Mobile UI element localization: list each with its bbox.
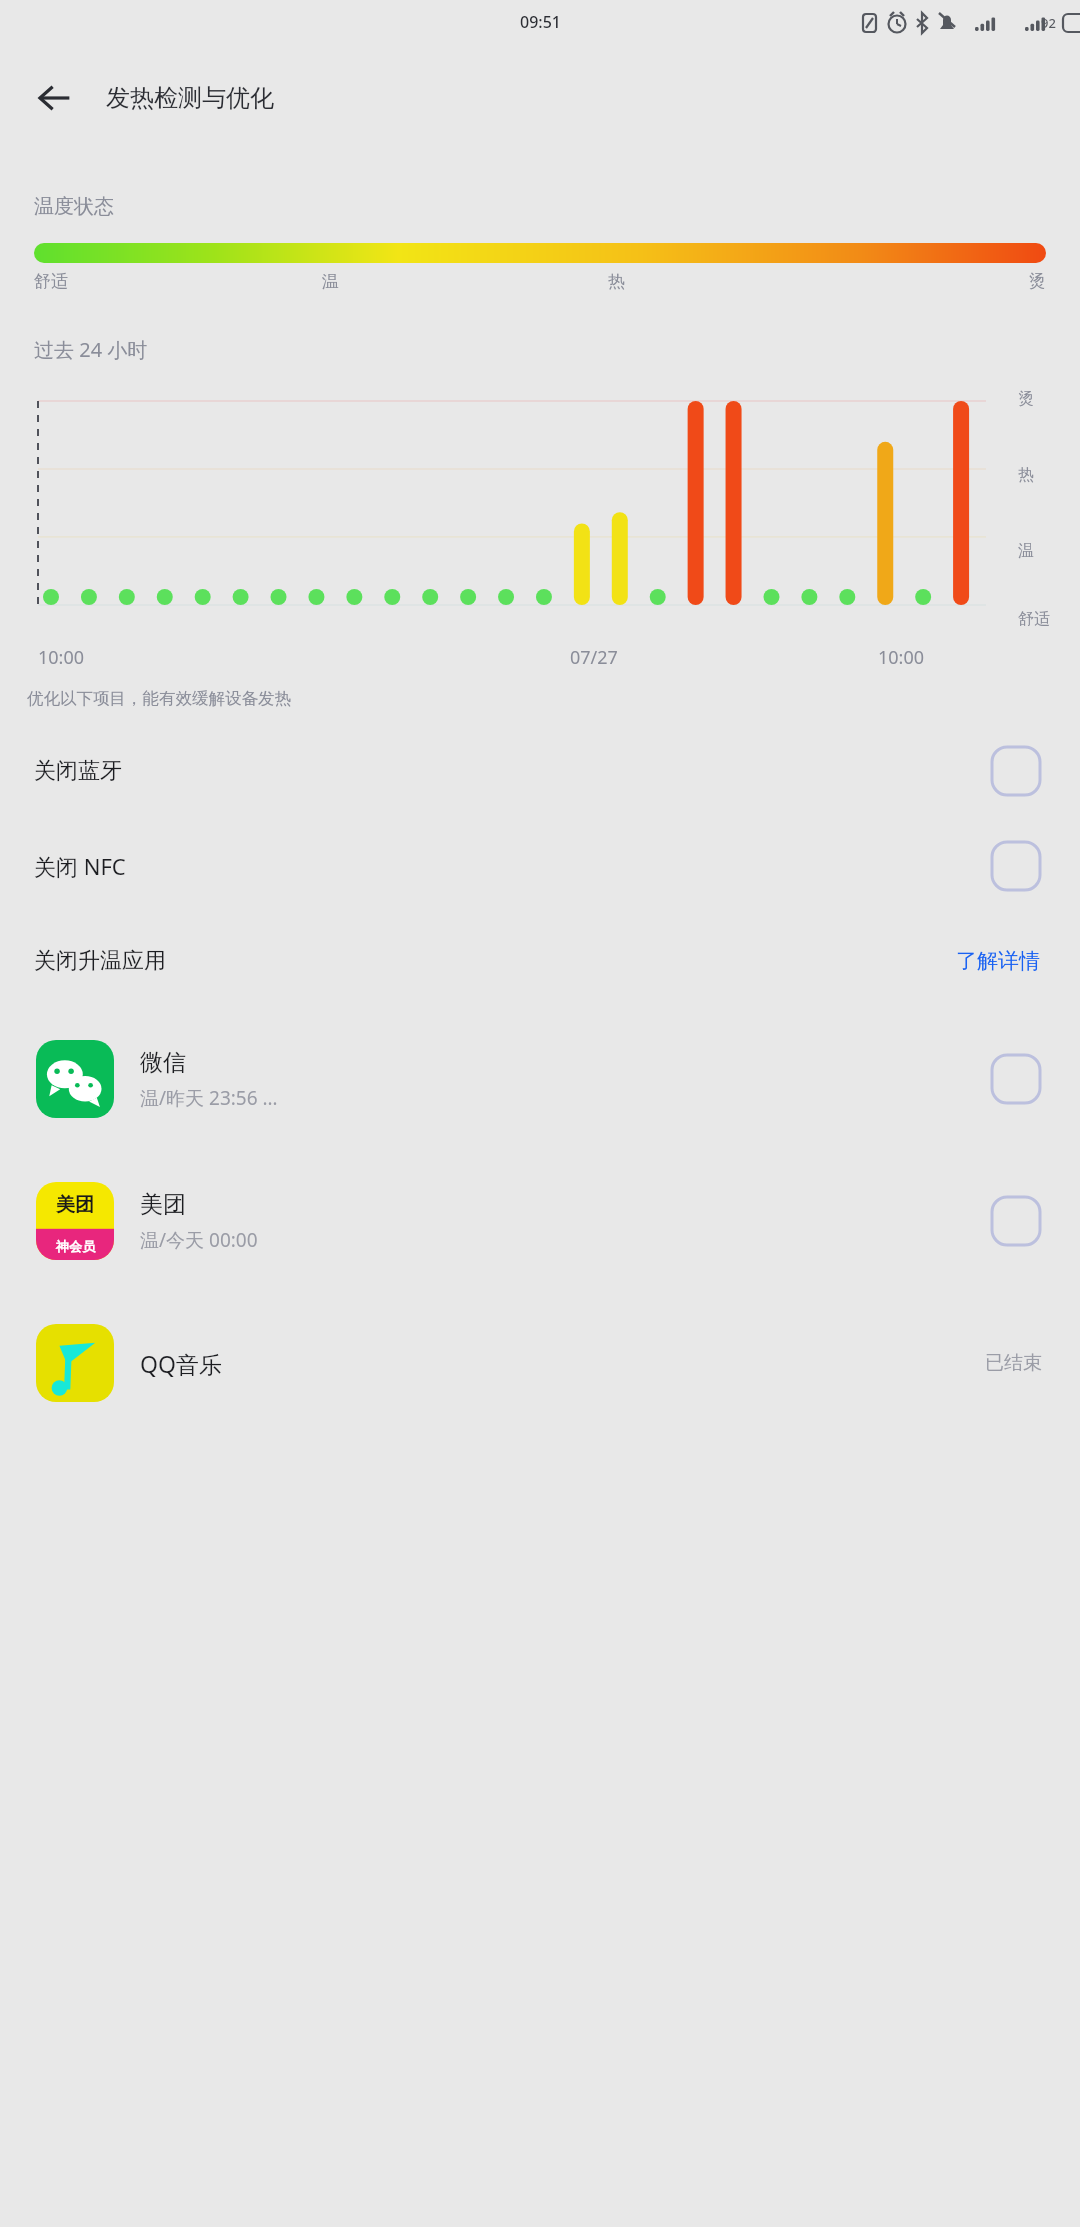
button[interactable]: 关闭蓝牙 bbox=[0, 723, 1080, 818]
staticText: 温度状态 bbox=[34, 194, 114, 219]
staticText: 微信 bbox=[140, 1048, 186, 1077]
staticText: 10:00 bbox=[38, 645, 85, 670]
staticText: 关闭 NFC bbox=[34, 851, 126, 881]
staticText: 热 bbox=[608, 271, 625, 292]
button[interactable]: 了解详情 bbox=[950, 942, 1046, 980]
button[interactable]: 微信 bbox=[0, 1008, 1080, 1150]
staticText: 10:00 bbox=[878, 645, 925, 670]
staticText: 07/27 bbox=[570, 645, 618, 670]
staticText: 发热检测与优化 bbox=[106, 83, 274, 113]
staticText: 92 bbox=[1041, 14, 1056, 32]
staticText: 烫 bbox=[1029, 271, 1046, 292]
staticText: 温/昨天 23:56 … bbox=[140, 1085, 278, 1111]
staticText: 09:51 bbox=[520, 11, 561, 33]
staticText: 温/今天 00:00 bbox=[140, 1227, 258, 1253]
staticText: 舒适 bbox=[1018, 609, 1050, 629]
button[interactable]: 美团 bbox=[0, 1150, 1080, 1292]
staticText: 神会员 bbox=[56, 1238, 95, 1254]
staticText: 关闭升温应用 bbox=[34, 947, 166, 975]
staticText: 热 bbox=[1018, 465, 1034, 485]
staticText: 已结束 bbox=[985, 1351, 1042, 1375]
staticText: 温 bbox=[1018, 541, 1034, 561]
staticText: 美团 bbox=[140, 1190, 186, 1219]
staticText: 美团 bbox=[56, 1193, 94, 1217]
button[interactable]: 返回 bbox=[22, 66, 86, 130]
staticText: 舒适 bbox=[34, 271, 68, 292]
staticText: QQ音乐 bbox=[140, 1348, 222, 1379]
button[interactable]: 关闭 NFC bbox=[0, 818, 1080, 913]
staticText: 过去 24 小时 bbox=[34, 336, 148, 363]
staticText: 了解详情 bbox=[956, 948, 1040, 974]
staticText: 温 bbox=[322, 271, 339, 292]
staticText: 烫 bbox=[1018, 389, 1034, 409]
staticText: 优化以下项目，能有效缓解设备发热 bbox=[27, 688, 291, 709]
staticText: 关闭蓝牙 bbox=[34, 757, 122, 785]
button[interactable]: QQ音乐 bbox=[0, 1292, 1080, 1434]
